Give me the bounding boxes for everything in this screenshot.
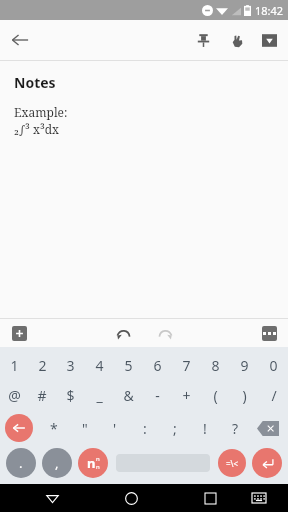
button[interactable]: 7: [172, 353, 201, 377]
staticText: #: [37, 386, 47, 405]
staticText: (: [213, 386, 218, 405]
staticText: n: [96, 455, 100, 463]
staticText: .: [19, 454, 23, 472]
staticText: _: [96, 386, 103, 405]
button[interactable]: Key: [6, 448, 36, 478]
button[interactable]: Save: [254, 23, 284, 57]
button[interactable]: $: [56, 383, 85, 407]
button[interactable]: 2: [28, 353, 56, 377]
button[interactable]: Switch keyboard: [246, 485, 272, 511]
button[interactable]: ;: [160, 413, 190, 443]
button[interactable]: /: [259, 383, 288, 407]
button[interactable]: !: [190, 413, 220, 443]
button[interactable]: More options: [258, 322, 280, 344]
staticText: ,: [55, 454, 59, 472]
staticText: ₂∫³ x³dx: [14, 121, 60, 137]
button[interactable]: Key: [252, 448, 282, 478]
staticText: ': [113, 419, 117, 438]
button[interactable]: #: [28, 383, 56, 407]
staticText: :: [143, 419, 147, 438]
button[interactable]: ': [100, 413, 130, 443]
staticText: $: [66, 386, 75, 405]
staticText: @: [8, 386, 21, 405]
staticText: !: [203, 419, 207, 438]
button[interactable]: 4: [85, 353, 114, 377]
staticText: 1: [10, 356, 19, 375]
staticText: 6: [153, 356, 162, 375]
staticText: ): [242, 386, 247, 405]
button[interactable]: 3: [56, 353, 85, 377]
button[interactable]: -: [143, 383, 172, 407]
staticText: 5: [124, 356, 133, 375]
button[interactable]: :: [130, 413, 160, 443]
button[interactable]: Key: [5, 414, 33, 442]
button[interactable]: Key: [42, 448, 72, 478]
staticText: 4: [95, 356, 104, 375]
button[interactable]: ": [69, 413, 100, 443]
button[interactable]: Recents: [196, 484, 224, 512]
staticText: =\<: [226, 458, 239, 469]
staticText: 18:42: [255, 3, 284, 18]
button[interactable]: 5: [114, 353, 143, 377]
staticText: &: [123, 386, 134, 405]
staticText: 9: [240, 356, 249, 375]
staticText: 8: [211, 356, 220, 375]
staticText: Example:: [14, 104, 68, 120]
button[interactable]: ): [230, 383, 259, 407]
button[interactable]: 6: [143, 353, 172, 377]
button[interactable]: Redo: [150, 319, 180, 347]
button[interactable]: 8: [201, 353, 230, 377]
button[interactable]: Pin: [186, 23, 220, 57]
button[interactable]: Handwriting: [220, 23, 254, 57]
button[interactable]: @: [0, 383, 28, 407]
button[interactable]: 9: [230, 353, 259, 377]
button[interactable]: Back: [0, 20, 40, 60]
button[interactable]: Home: [117, 484, 145, 512]
staticText: 2: [38, 356, 47, 375]
staticText: -: [155, 386, 160, 405]
staticText: n: [96, 463, 100, 471]
staticText: 0: [269, 356, 278, 375]
button[interactable]: Backspace: [253, 415, 283, 441]
staticText: n: [87, 454, 96, 472]
staticText: ;: [173, 419, 177, 438]
button[interactable]: ?: [220, 413, 250, 443]
button[interactable]: 0: [259, 353, 288, 377]
button[interactable]: Back: [38, 484, 66, 512]
staticText: +: [182, 386, 191, 405]
button[interactable]: *: [38, 413, 69, 443]
staticText: 3: [66, 356, 75, 375]
button[interactable]: Add: [8, 322, 30, 344]
button[interactable]: Key: [78, 448, 108, 478]
staticText: ": [82, 419, 88, 438]
staticText: *: [50, 419, 58, 438]
staticText: 7: [182, 356, 191, 375]
staticText: Notes: [14, 73, 56, 92]
button[interactable]: (: [201, 383, 230, 407]
button[interactable]: Undo: [108, 319, 138, 347]
staticText: ?: [232, 419, 239, 438]
button[interactable]: &: [114, 383, 143, 407]
button[interactable]: 1: [0, 353, 28, 377]
button[interactable]: _: [85, 383, 114, 407]
staticText: /: [271, 386, 277, 405]
button[interactable]: Key: [218, 449, 246, 477]
button[interactable]: +: [172, 383, 201, 407]
